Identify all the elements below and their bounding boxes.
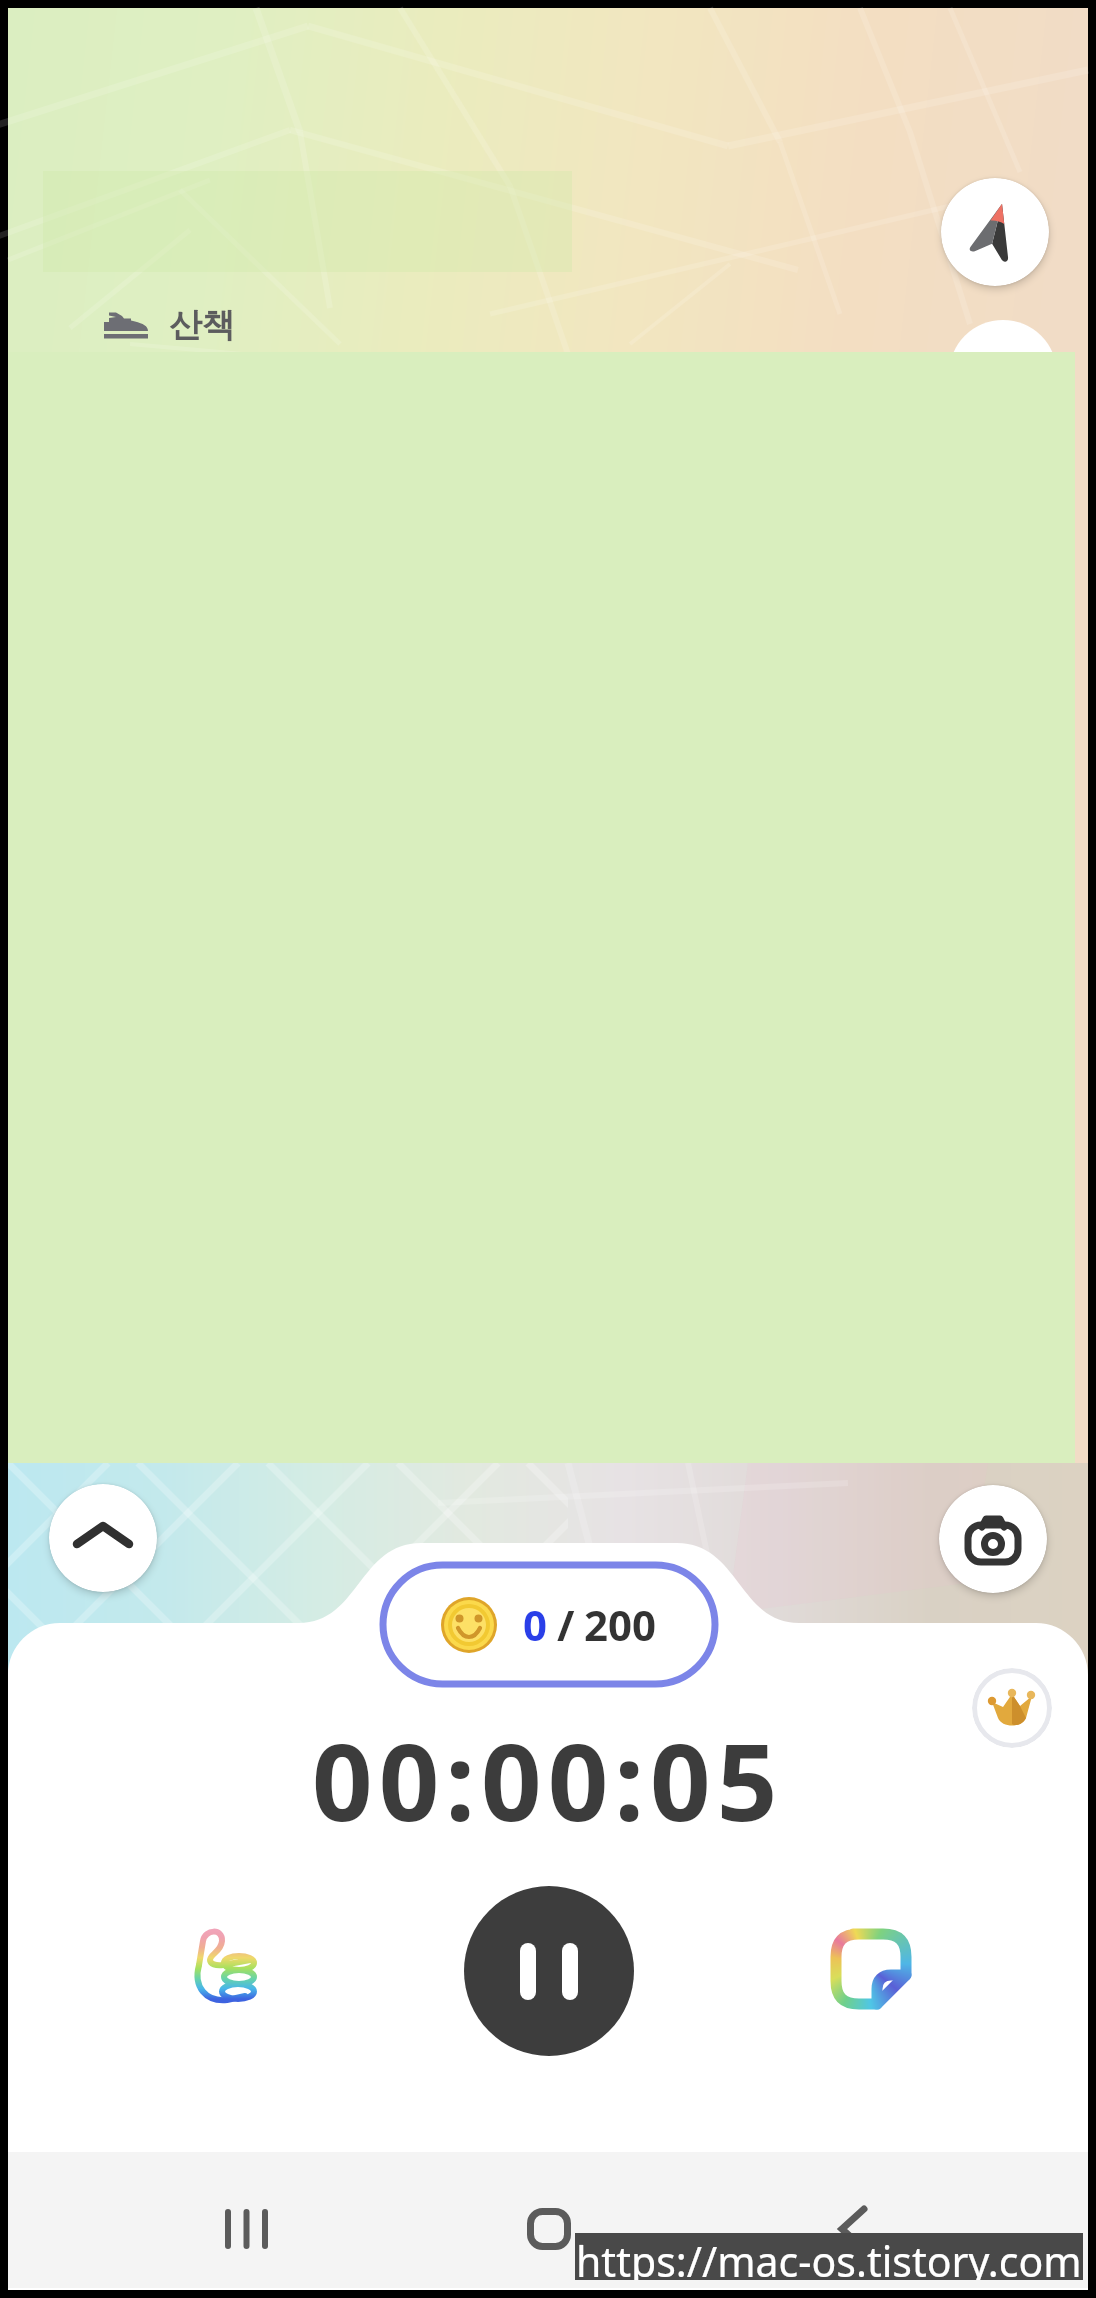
staticText: 00:00:05 (312, 1708, 784, 1852)
button[interactable]: Home (490, 2169, 608, 2289)
staticText: / (557, 1596, 575, 1653)
button[interactable]: Back (794, 2169, 912, 2289)
button[interactable]: Compass (941, 178, 1049, 286)
staticText: 산책 (169, 304, 235, 346)
button[interactable]: Recent apps (187, 2169, 305, 2289)
button[interactable]: 0 (380, 1562, 718, 1687)
button[interactable]: Like (180, 1913, 276, 2009)
button[interactable]: Premium rewards (972, 1668, 1052, 1748)
staticText: 200 (584, 1596, 657, 1653)
staticText: 0 (523, 1596, 548, 1653)
button[interactable]: Pause (464, 1886, 634, 2056)
button[interactable]: Expand details (49, 1484, 157, 1592)
button[interactable]: Map layers (949, 320, 1057, 428)
button[interactable]: Camera (939, 1485, 1047, 1593)
staticText: https://mac-os.tistory.com (576, 2233, 1082, 2280)
button[interactable]: Sticker (827, 1925, 915, 2013)
